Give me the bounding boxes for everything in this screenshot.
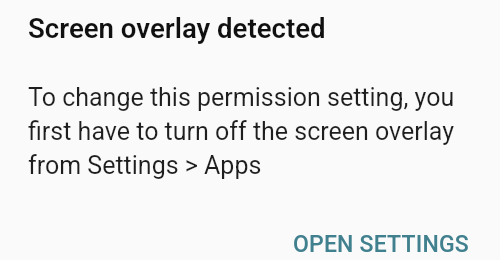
staticText: To change this permission setting, you f… [28, 83, 476, 180]
staticText: Screen overlay detected [28, 12, 326, 44]
staticText: OPEN SETTINGS [293, 231, 469, 258]
button[interactable]: Open Settings [281, 225, 481, 260]
